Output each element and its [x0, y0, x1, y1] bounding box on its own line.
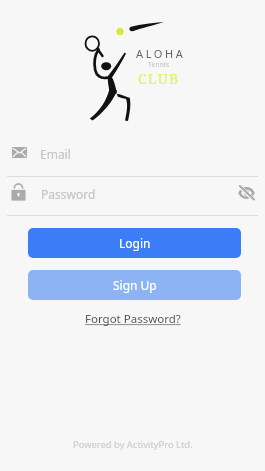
- button[interactable]: Forgot Password?: [79, 308, 187, 330]
- staticText: Email: [40, 146, 71, 162]
- staticText: ALOHA: [136, 46, 186, 61]
- button[interactable]: Sign Up: [28, 270, 241, 300]
- button[interactable]: Show password: [239, 186, 254, 200]
- staticText: Sign Up: [113, 277, 157, 293]
- button[interactable]: Login: [28, 228, 241, 258]
- staticText: Password: [41, 186, 96, 202]
- staticText: Forgot Password?: [85, 311, 181, 327]
- staticText: Login: [119, 235, 151, 251]
- staticText: Powered by ActivityPro Ltd.: [73, 438, 193, 451]
- button[interactable]: Email: [0, 143, 265, 178]
- button[interactable]: Password: [0, 181, 265, 217]
- staticText: CLUB: [138, 69, 180, 88]
- staticText: Tennis: [148, 60, 170, 69]
